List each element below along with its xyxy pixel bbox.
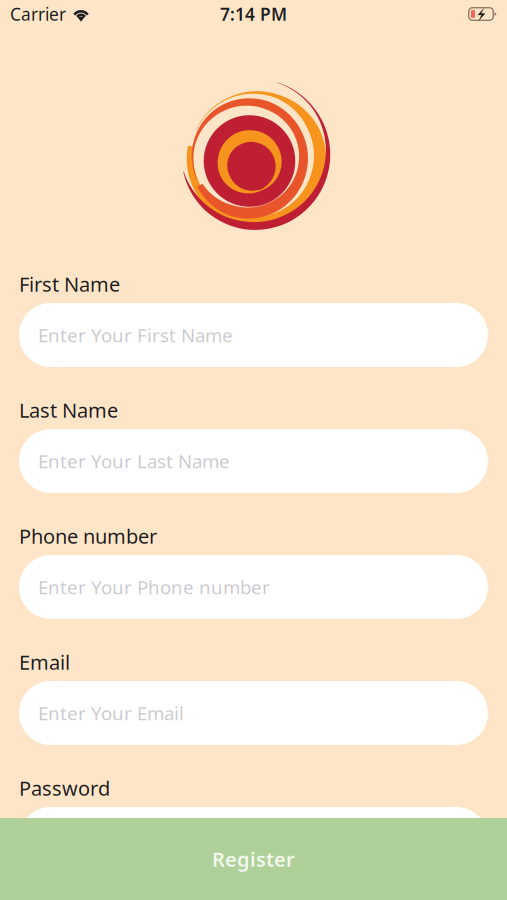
staticText: Enter Your First Name (38, 323, 233, 347)
staticText: Last Name (19, 397, 118, 423)
staticText: First Name (19, 271, 120, 297)
staticText: Enter Your Phone number (38, 575, 270, 599)
button[interactable]: Enter Your Password (19, 807, 488, 871)
button[interactable]: Enter Your First Name (19, 303, 488, 367)
button[interactable]: Enter Your Phone number (19, 555, 488, 619)
staticText: Email (19, 649, 70, 675)
staticText: Password (19, 775, 110, 801)
staticText: Carrier (10, 2, 66, 25)
button[interactable]: Enter Your Last Name (19, 429, 488, 493)
staticText: Enter Your Email (38, 701, 184, 725)
staticText: Phone number (19, 523, 157, 549)
button[interactable]: Enter Your Email (19, 681, 488, 745)
staticText: 7:14 PM (220, 2, 287, 25)
staticText: Enter Your Last Name (38, 449, 230, 473)
button[interactable]: Register (0, 818, 507, 900)
staticText: Register (212, 846, 295, 872)
